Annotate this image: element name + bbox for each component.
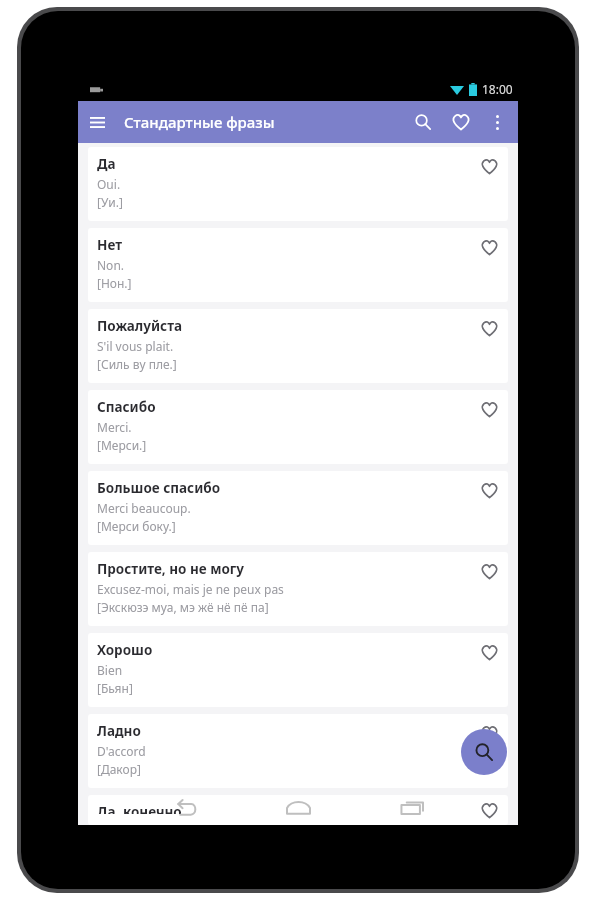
staticText: [Дакор]: [97, 761, 141, 777]
button[interactable]: Search: [404, 103, 442, 141]
staticText: [Экскюзэ муа, мэ жё нё пё па]: [97, 599, 269, 615]
staticText: Стандартные фразы: [124, 112, 275, 132]
button[interactable]: Ладно: [88, 714, 508, 788]
button[interactable]: Add to favorites: [470, 552, 508, 590]
button[interactable]: Favorites: [442, 103, 480, 141]
button[interactable]: Add to favorites: [470, 147, 508, 185]
button[interactable]: Простите, но не могу: [88, 552, 508, 626]
staticText: Да, конечно: [97, 803, 182, 814]
button[interactable]: Recent apps: [355, 783, 468, 831]
button[interactable]: Add to favorites: [470, 309, 508, 347]
staticText: [Бьян]: [97, 680, 133, 696]
button[interactable]: Back: [128, 783, 242, 831]
button[interactable]: Search: [461, 729, 507, 775]
staticText: [Мерси боку.]: [97, 518, 176, 534]
staticText: D'accord: [97, 743, 146, 759]
staticText: Merci beaucoup.: [97, 500, 191, 516]
staticText: Bien: [97, 662, 123, 678]
button[interactable]: Нет: [88, 228, 508, 302]
button[interactable]: Add to favorites: [470, 714, 508, 752]
button[interactable]: Home: [242, 783, 355, 831]
button[interactable]: Хорошо: [88, 633, 508, 707]
staticText: Ладно: [97, 722, 141, 740]
staticText: 18:00: [482, 81, 513, 97]
staticText: [Нон.]: [97, 275, 132, 291]
button[interactable]: More options: [480, 105, 514, 139]
staticText: [Уи.]: [97, 194, 123, 210]
staticText: Non.: [97, 257, 125, 273]
button[interactable]: Add to favorites: [470, 390, 508, 428]
button[interactable]: Open navigation drawer: [78, 103, 116, 141]
button[interactable]: Add to favorites: [470, 228, 508, 266]
button[interactable]: Add to favorites: [470, 633, 508, 671]
button[interactable]: Пожалуйста: [88, 309, 508, 383]
button[interactable]: Add to favorites: [470, 471, 508, 509]
staticText: Excusez-moi, mais je ne peux pas: [97, 581, 284, 597]
staticText: Merci.: [97, 419, 132, 435]
staticText: Хорошо: [97, 641, 153, 659]
staticText: Спасибо: [97, 398, 156, 416]
staticText: [Силь ву пле.]: [97, 356, 177, 372]
staticText: Простите, но не могу: [97, 560, 244, 578]
staticText: [Мерси.]: [97, 437, 147, 453]
button[interactable]: Да, конечно: [88, 795, 508, 825]
button[interactable]: Спасибо: [88, 390, 508, 464]
button[interactable]: Add to favorites: [470, 795, 508, 825]
button[interactable]: Большое спасибо: [88, 471, 508, 545]
staticText: Да: [97, 155, 116, 173]
button[interactable]: Да: [88, 147, 508, 221]
staticText: Oui.: [97, 176, 121, 192]
staticText: Большое спасибо: [97, 479, 221, 497]
staticText: Нет: [97, 236, 122, 254]
staticText: S'il vous plait.: [97, 338, 174, 354]
staticText: Пожалуйста: [97, 317, 183, 335]
